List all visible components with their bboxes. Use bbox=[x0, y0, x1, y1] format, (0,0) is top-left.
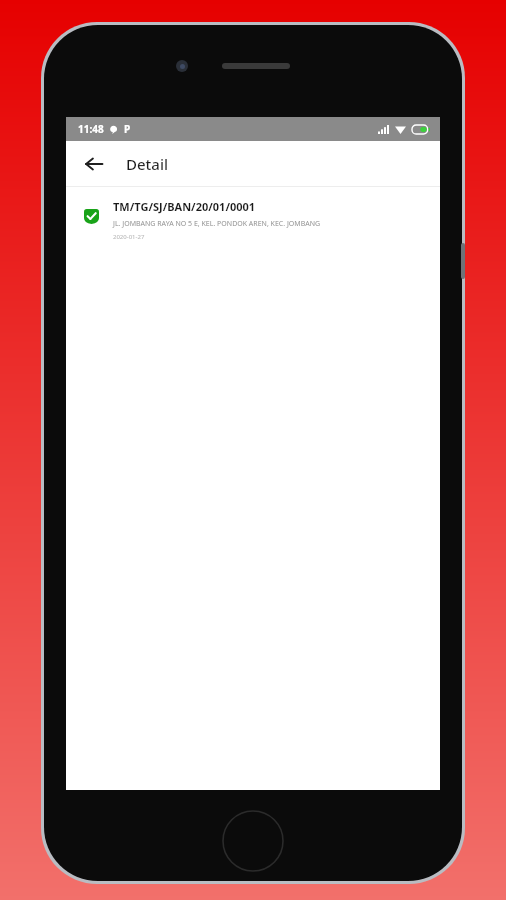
staticText: P bbox=[124, 122, 131, 136]
staticText: TM/TG/SJ/BAN/20/01/0001 bbox=[113, 199, 256, 214]
staticText: JL. JOMBANG RAYA NO 5 E, KEL. PONDOK ARE… bbox=[113, 219, 321, 229]
staticText: Detail bbox=[126, 154, 169, 174]
staticText: 11:48 bbox=[78, 122, 104, 136]
button[interactable]: Back bbox=[74, 144, 114, 184]
button[interactable]: TM/TG/SJ/BAN/20/01/0001 bbox=[66, 187, 440, 253]
staticText: 2020-01-27 bbox=[113, 233, 145, 241]
